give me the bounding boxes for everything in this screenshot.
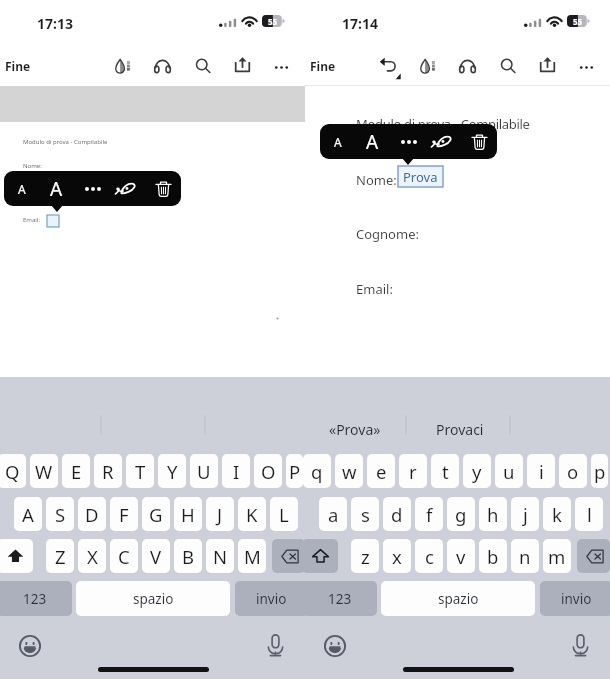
staticText: invio: [561, 590, 592, 608]
button[interactable]: N: [206, 539, 234, 573]
button[interactable]: j: [511, 497, 539, 531]
button[interactable]: f: [415, 497, 443, 531]
button[interactable]: J: [206, 497, 234, 531]
button[interactable]: Signature: [428, 124, 455, 159]
button[interactable]: p: [591, 454, 608, 488]
button[interactable]: Listen: [153, 57, 172, 76]
button[interactable]: Shift: [0, 539, 33, 573]
button[interactable]: Dictation: [572, 634, 589, 657]
button[interactable]: d: [383, 497, 411, 531]
button[interactable]: Undo: [379, 56, 398, 75]
button[interactable]: I: [222, 454, 250, 488]
staticText: c: [425, 544, 434, 569]
button[interactable]: Shift: [302, 539, 338, 573]
button[interactable]: Q: [0, 454, 26, 488]
button[interactable]: Search: [499, 57, 517, 75]
button[interactable]: Provaci: [428, 415, 492, 444]
button[interactable]: c: [415, 539, 443, 573]
button[interactable]: S: [46, 497, 74, 531]
button[interactable]: q: [303, 454, 331, 488]
button[interactable]: Listen: [458, 57, 477, 76]
staticText: l: [587, 502, 592, 527]
button[interactable]: y: [463, 454, 491, 488]
button[interactable]: z: [351, 539, 379, 573]
button[interactable]: a: [319, 497, 347, 531]
button[interactable]: invio: [540, 581, 610, 616]
button[interactable]: E: [62, 454, 90, 488]
button[interactable]: V: [142, 539, 170, 573]
button[interactable]: P: [286, 454, 303, 488]
button[interactable]: G: [142, 497, 170, 531]
staticText: Y: [167, 459, 178, 484]
button[interactable]: B: [174, 539, 202, 573]
staticText: t: [442, 459, 449, 484]
button[interactable]: A: [324, 124, 351, 159]
button[interactable]: m: [543, 539, 571, 573]
button[interactable]: 123: [0, 581, 72, 616]
button[interactable]: Backspace: [577, 539, 610, 573]
button[interactable]: H: [174, 497, 202, 531]
button[interactable]: g: [447, 497, 475, 531]
button[interactable]: spazio: [381, 581, 535, 616]
button[interactable]: 123: [302, 581, 377, 616]
button[interactable]: R: [94, 454, 122, 488]
button[interactable]: w: [335, 454, 363, 488]
button[interactable]: spazio: [76, 581, 230, 616]
button[interactable]: o: [559, 454, 587, 488]
button[interactable]: t: [431, 454, 459, 488]
button[interactable]: Delete: [466, 124, 493, 159]
button[interactable]: L: [270, 497, 298, 531]
button[interactable]: T: [126, 454, 154, 488]
button[interactable]: F: [110, 497, 138, 531]
button[interactable]: «Prova»: [321, 415, 389, 444]
button[interactable]: W: [30, 454, 58, 488]
button[interactable]: Fine: [305, 53, 346, 79]
button[interactable]: h: [479, 497, 507, 531]
button[interactable]: Prova: [398, 166, 443, 187]
button[interactable]: A: [43, 171, 70, 206]
button[interactable]: invio: [235, 581, 308, 616]
button[interactable]: u: [495, 454, 523, 488]
button[interactable]: A: [8, 171, 35, 206]
button[interactable]: i: [527, 454, 555, 488]
button[interactable]: e: [367, 454, 395, 488]
button[interactable]: r: [399, 454, 427, 488]
staticText: s: [361, 502, 370, 527]
button[interactable]: C: [110, 539, 138, 573]
button[interactable]: More: [395, 124, 422, 159]
button[interactable]: Highlighter: [419, 57, 437, 75]
button[interactable]: Emoji keyboard: [19, 635, 41, 657]
button[interactable]: More options: [274, 60, 289, 75]
button[interactable]: l: [575, 497, 603, 531]
button[interactable]: A: [14, 497, 42, 531]
button[interactable]: k: [543, 497, 571, 531]
button[interactable]: M: [238, 539, 266, 573]
button[interactable]: X: [78, 539, 106, 573]
button[interactable]: b: [479, 539, 507, 573]
button[interactable]: Y: [158, 454, 186, 488]
button[interactable]: Emoji keyboard: [324, 635, 346, 657]
button[interactable]: Share: [234, 56, 251, 73]
button[interactable]: s: [351, 497, 379, 531]
button[interactable]: Fine: [0, 53, 41, 79]
button[interactable]: Search: [194, 57, 212, 75]
button[interactable]: More options: [579, 60, 594, 75]
button[interactable]: Dictation: [267, 634, 284, 657]
button[interactable]: [47, 215, 59, 227]
button[interactable]: O: [254, 454, 282, 488]
button[interactable]: D: [78, 497, 106, 531]
button[interactable]: Z: [46, 539, 74, 573]
button[interactable]: Share: [539, 56, 556, 73]
button[interactable]: U: [190, 454, 218, 488]
button[interactable]: More: [79, 171, 106, 206]
button[interactable]: Highlighter: [114, 57, 132, 75]
button[interactable]: Signature: [112, 171, 139, 206]
button[interactable]: K: [238, 497, 266, 531]
staticText: O: [261, 459, 276, 484]
button[interactable]: x: [383, 539, 411, 573]
button[interactable]: Backspace: [272, 539, 305, 573]
button[interactable]: v: [447, 539, 475, 573]
button[interactable]: n: [511, 539, 539, 573]
button[interactable]: A: [359, 124, 386, 159]
button[interactable]: Delete: [150, 171, 177, 206]
